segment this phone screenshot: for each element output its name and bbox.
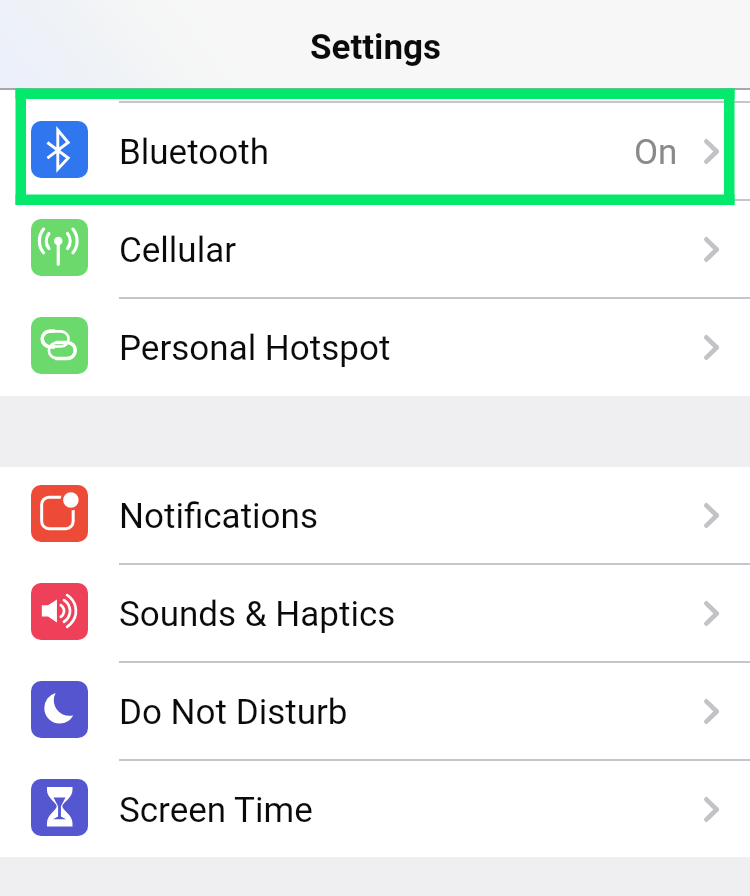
button[interactable]: Do Not Disturb (0, 663, 750, 759)
staticText: Cellular (119, 230, 237, 271)
staticText: Sounds & Haptics (119, 594, 396, 635)
staticText: Bluetooth (119, 132, 269, 173)
button[interactable]: Bluetooth (0, 103, 750, 199)
staticText: Do Not Disturb (119, 692, 348, 733)
staticText: Notifications (119, 496, 318, 537)
button[interactable]: Cellular (0, 201, 750, 297)
button[interactable]: Personal Hotspot (0, 299, 750, 396)
button[interactable]: Notifications (0, 467, 750, 563)
button[interactable]: Screen Time (0, 761, 750, 857)
staticText: Personal Hotspot (119, 328, 391, 369)
staticText: Settings (310, 27, 441, 68)
staticText: On (634, 132, 678, 173)
staticText: Screen Time (119, 790, 313, 831)
button[interactable]: Sounds & Haptics (0, 565, 750, 661)
